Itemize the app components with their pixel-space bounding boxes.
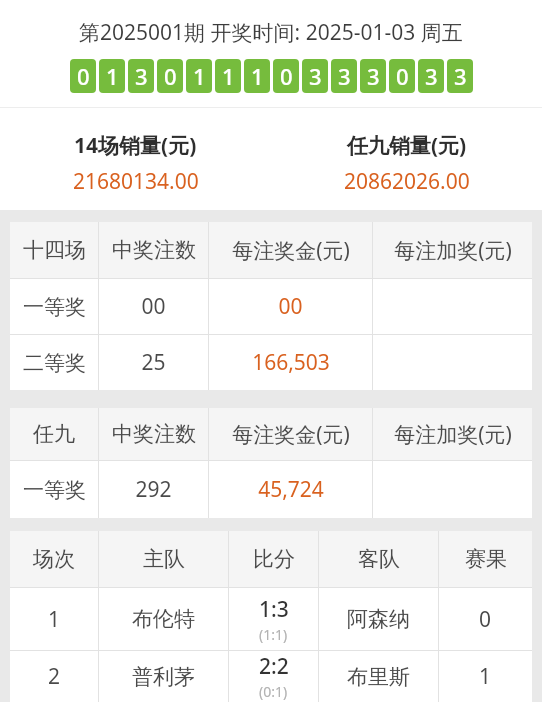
staticText: 一等奖: [23, 294, 86, 320]
button[interactable]: 3: [360, 59, 386, 93]
staticText: 客队: [358, 546, 400, 572]
button[interactable]: 1: [186, 59, 212, 93]
staticText: 1: [479, 662, 492, 691]
button[interactable]: 3: [447, 59, 473, 93]
staticText: 166,503: [252, 348, 330, 377]
staticText: 21680134.00: [73, 167, 199, 196]
staticText: 每注奖金(元): [232, 236, 350, 265]
button[interactable]: 1: [215, 59, 241, 93]
staticText: (1:1): [259, 625, 288, 644]
button[interactable]: 场次: [10, 531, 532, 587]
staticText: 3: [367, 61, 380, 91]
staticText: 比分: [253, 546, 295, 572]
staticText: 十四场: [23, 237, 86, 263]
staticText: 中奖注数: [112, 421, 196, 447]
staticText: 0: [77, 61, 90, 91]
staticText: 布伦特: [132, 606, 195, 632]
button[interactable]: 0: [273, 59, 299, 93]
button[interactable]: 0: [70, 59, 96, 93]
staticText: 场次: [33, 546, 75, 572]
staticText: 25: [141, 348, 166, 377]
staticText: 3: [135, 61, 148, 91]
button[interactable]: 2: [10, 651, 532, 702]
staticText: 普利茅: [132, 664, 195, 690]
staticText: 任九销量(元): [347, 131, 467, 160]
staticText: 1: [48, 605, 61, 634]
staticText: 45,724: [258, 475, 324, 504]
staticText: 0: [164, 61, 177, 91]
button[interactable]: 任九: [10, 408, 532, 460]
staticText: 每注加奖(元): [394, 236, 512, 265]
button[interactable]: 1: [10, 588, 532, 650]
button[interactable]: 3: [331, 59, 357, 93]
staticText: (0:1): [259, 682, 288, 701]
staticText: 每注奖金(元): [232, 420, 350, 449]
staticText: 1: [193, 61, 206, 91]
staticText: 阿森纳: [347, 606, 410, 632]
button[interactable]: 一等奖: [10, 279, 532, 334]
staticText: 0: [479, 605, 492, 634]
staticText: 第2025001期 开奖时间: 2025-01-03 周五: [79, 18, 463, 47]
button[interactable]: 0: [389, 59, 415, 93]
staticText: 00: [141, 292, 166, 321]
staticText: 0: [396, 61, 409, 91]
staticText: 2: [48, 662, 61, 691]
button[interactable]: 0: [157, 59, 183, 93]
button[interactable]: 3: [302, 59, 328, 93]
button[interactable]: 1: [244, 59, 270, 93]
staticText: 一等奖: [23, 477, 86, 503]
staticText: 3: [425, 61, 438, 91]
staticText: 20862026.00: [344, 167, 470, 196]
staticText: 中奖注数: [112, 237, 196, 263]
staticText: 1: [106, 61, 119, 91]
staticText: 1:3: [259, 595, 289, 624]
staticText: 1: [251, 61, 264, 91]
staticText: 3: [309, 61, 322, 91]
staticText: 292: [135, 475, 172, 504]
staticText: 任九: [33, 421, 75, 447]
staticText: 主队: [143, 546, 185, 572]
staticText: 二等奖: [23, 350, 86, 376]
button[interactable]: 1: [99, 59, 125, 93]
button[interactable]: 3: [418, 59, 444, 93]
button[interactable]: 十四场: [10, 222, 532, 278]
staticText: 2:2: [259, 652, 289, 681]
staticText: 3: [454, 61, 467, 91]
button[interactable]: 3: [128, 59, 154, 93]
staticText: 0: [280, 61, 293, 91]
button[interactable]: 二等奖: [10, 335, 532, 390]
staticText: 每注加奖(元): [394, 420, 512, 449]
staticText: 3: [338, 61, 351, 91]
staticText: 赛果: [465, 546, 507, 572]
staticText: 布里斯: [347, 664, 410, 690]
staticText: 14场销量(元): [74, 131, 197, 160]
staticText: 00: [278, 292, 303, 321]
button[interactable]: 一等奖: [10, 461, 532, 518]
staticText: 1: [222, 61, 235, 91]
